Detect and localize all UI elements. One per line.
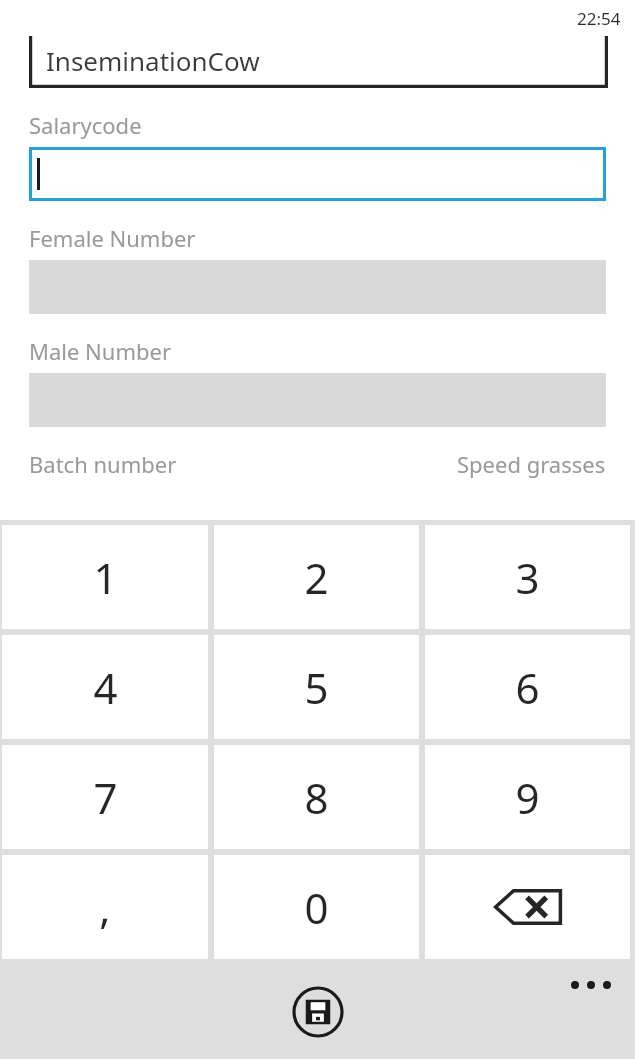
button[interactable] [29,147,606,201]
staticText: 4 [93,659,118,716]
button[interactable]: Save [290,984,346,1040]
staticText: 8 [304,769,329,826]
button[interactable]: 8 [214,745,419,849]
button[interactable]: 7 [2,745,208,849]
staticText: Speed grasses [457,449,606,479]
button[interactable]: 5 [214,635,419,739]
staticText: Batch number [29,449,177,479]
staticText: Female Number [29,223,196,253]
staticText: Male Number [29,336,172,366]
staticText: 3 [515,549,540,606]
button[interactable]: 3 [425,525,630,629]
staticText: 2 [304,549,329,606]
button[interactable]: Backspace [425,855,630,959]
button[interactable]: 1 [2,525,208,629]
staticText: 6 [515,659,540,716]
button[interactable]: 0 [214,855,419,959]
staticText: 7 [93,769,118,826]
staticText: InseminationCow [46,43,260,78]
staticText: Salarycode [29,110,142,140]
button[interactable]: 4 [2,635,208,739]
staticText: 5 [304,659,329,716]
staticText: , [99,879,111,936]
staticText: 22:54 [577,7,621,30]
button[interactable]: , [2,855,208,959]
staticText: 9 [515,769,540,826]
button[interactable]: 2 [214,525,419,629]
staticText: 1 [93,549,118,606]
button[interactable]: 9 [425,745,630,849]
button[interactable]: 6 [425,635,630,739]
staticText: 0 [304,879,329,936]
button[interactable]: More options [565,975,617,995]
